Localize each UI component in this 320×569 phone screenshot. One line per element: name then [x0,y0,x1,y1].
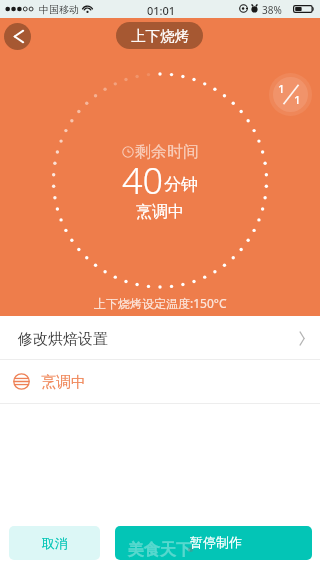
staticText: 烹调中 [136,202,184,222]
staticText: 中国移动 [39,3,79,16]
button[interactable]: 烹调中 [0,360,320,403]
staticText: 38% [262,3,282,17]
staticText: 40 [122,156,164,205]
staticText: 分钟 [164,174,198,195]
staticText: 修改烘焙设置 [18,330,108,349]
button[interactable]: 取消 [9,526,100,560]
staticText: 烹调中 [41,373,86,392]
staticText: 美食天下 [128,540,192,560]
button[interactable]: 美食天下 [115,526,312,560]
staticText: 剩余时间 [135,142,199,162]
staticText: 上下烧烤 [131,27,189,45]
button[interactable]: Back [4,23,31,50]
staticText: 上下烧烤设定温度:150°C [94,295,227,311]
staticText: 01:01 [147,3,176,18]
staticText: 1 [278,81,285,97]
staticText: 1 [294,92,301,108]
button[interactable]: Step 1 of 1 [269,73,312,116]
button[interactable]: 修改烘焙设置 [0,316,320,359]
button[interactable]: 上下烧烤 [116,22,203,49]
staticText: 取消 [42,535,68,551]
staticText: 暂停制作 [190,534,242,550]
